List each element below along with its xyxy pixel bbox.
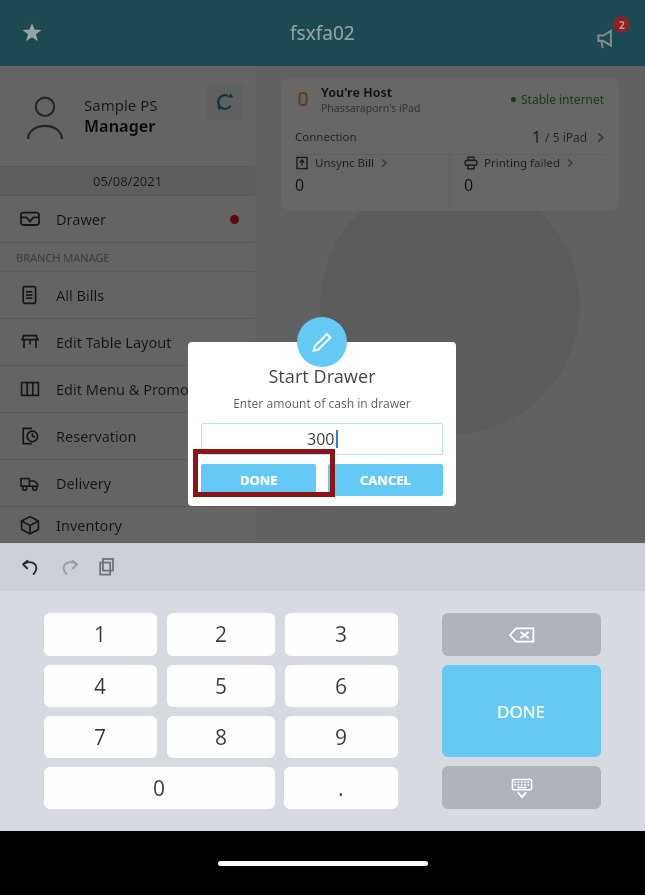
button[interactable]: 4 — [44, 665, 157, 707]
staticText: BRANCH MANAGE — [16, 250, 110, 265]
staticText: Enter amount of cash in drawer — [188, 395, 456, 411]
button[interactable]: Reservation — [0, 413, 255, 459]
staticText: All Bills — [56, 285, 105, 305]
button[interactable]: 6 — [285, 665, 398, 707]
staticText: DONE — [240, 471, 278, 489]
staticText: fsxfa02 — [290, 20, 355, 46]
button[interactable]: All Bills — [0, 272, 255, 318]
staticText: 300 — [307, 428, 335, 450]
staticText: DONE — [497, 700, 546, 723]
button[interactable]: 1 — [44, 613, 157, 656]
staticText: Start Drawer — [188, 364, 456, 389]
staticText: 4 — [94, 672, 107, 701]
staticText: 1 — [94, 620, 107, 649]
staticText: 2 — [619, 18, 625, 32]
button[interactable]: Paste — [90, 550, 124, 584]
staticText: 05/08/2021 — [93, 172, 163, 190]
staticText: Drawer — [56, 209, 106, 229]
staticText: Edit Table Layout — [56, 332, 172, 352]
button[interactable]: Announcements — [589, 9, 637, 57]
button[interactable]: Backspace — [442, 613, 601, 656]
button[interactable]: Connection — [295, 120, 605, 154]
staticText: 7 — [94, 723, 107, 752]
staticText: 2 — [215, 620, 228, 649]
button[interactable]: 3 — [285, 613, 398, 656]
button[interactable]: Drawer — [0, 196, 255, 242]
button[interactable]: Unsync Bill — [295, 155, 449, 196]
staticText: Reservation — [56, 426, 137, 446]
button[interactable]: CANCEL — [328, 464, 443, 496]
button[interactable]: 300 — [201, 423, 443, 455]
staticText: Inventory — [56, 515, 122, 535]
button[interactable]: 9 — [285, 716, 398, 758]
button[interactable]: Edit Table Layout — [0, 319, 255, 365]
staticText: 3 — [335, 620, 348, 649]
button[interactable]: Printing failed — [464, 155, 605, 196]
staticText: 0 — [464, 174, 474, 196]
staticText: 1 — [532, 126, 542, 148]
staticText: 0 — [153, 774, 166, 803]
staticText: CANCEL — [360, 471, 411, 489]
button[interactable]: . — [284, 767, 398, 809]
staticText: Unsync Bill — [315, 155, 374, 171]
staticText: 5 — [215, 672, 228, 701]
staticText: Stable internet — [521, 91, 605, 107]
staticText: You're Host — [321, 84, 393, 101]
staticText: Printing failed — [484, 155, 560, 171]
button[interactable]: DONE — [201, 464, 316, 496]
staticText: Sample PS — [84, 95, 158, 115]
button[interactable]: 2 — [167, 613, 275, 656]
button[interactable]: Edit Menu & Promotion — [0, 366, 255, 412]
button[interactable]: Undo — [14, 550, 48, 584]
staticText: 6 — [335, 672, 348, 701]
staticText: 9 — [335, 723, 348, 752]
button[interactable]: 5 — [167, 665, 275, 707]
button[interactable]: DONE — [442, 665, 601, 757]
staticText: . — [338, 774, 344, 803]
staticText: Manager — [84, 115, 156, 137]
button[interactable]: Sync — [207, 84, 243, 120]
button[interactable]: Inventory — [0, 507, 255, 543]
button[interactable]: 8 — [167, 716, 275, 758]
staticText: 8 — [215, 723, 228, 752]
button[interactable]: Delivery — [0, 460, 255, 506]
staticText: Edit Menu & Promotion — [56, 379, 216, 399]
button[interactable]: Favorite — [8, 9, 56, 57]
button[interactable]: 0 — [44, 767, 275, 809]
button[interactable]: 7 — [44, 716, 157, 758]
staticText: / 5 iPad — [542, 129, 588, 145]
staticText: Connection — [295, 129, 357, 145]
button[interactable]: Edit — [297, 317, 347, 367]
staticText: Delivery — [56, 473, 112, 493]
staticText: Phassaraporn's iPad — [321, 101, 421, 115]
staticText: 0 — [295, 174, 305, 196]
button[interactable]: Hide keyboard — [442, 766, 601, 809]
button[interactable]: Redo — [52, 550, 86, 584]
